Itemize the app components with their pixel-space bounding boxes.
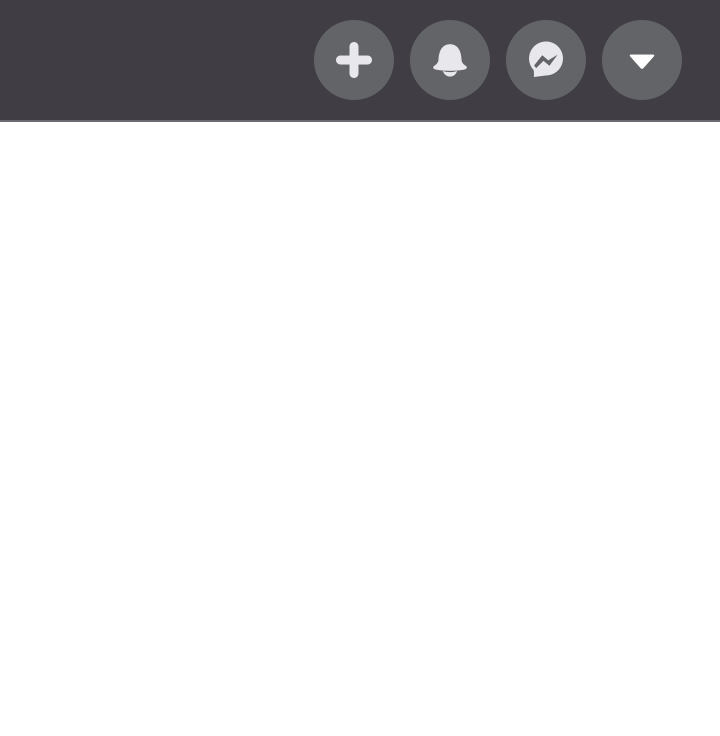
button[interactable]: New post bbox=[314, 20, 394, 100]
button[interactable]: More bbox=[602, 20, 682, 100]
button[interactable]: Messenger bbox=[506, 20, 586, 100]
button[interactable]: Notifications bbox=[410, 20, 490, 100]
